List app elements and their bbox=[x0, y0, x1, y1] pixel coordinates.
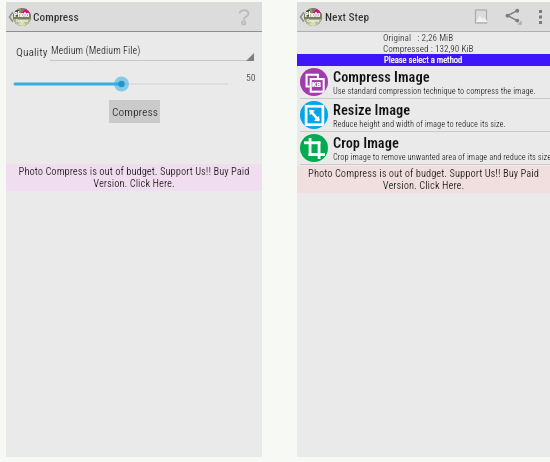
staticText: Quality bbox=[16, 45, 48, 58]
button[interactable]: Crop Image bbox=[297, 132, 550, 164]
staticText: Photo bbox=[14, 11, 30, 19]
button[interactable]: More options bbox=[530, 2, 550, 31]
button[interactable]: Photo bbox=[297, 2, 374, 31]
staticText: Compress Image bbox=[333, 69, 430, 86]
button[interactable]: Photo Compress is out of budget. Support… bbox=[297, 166, 550, 193]
staticText: Medium (Medium File) bbox=[51, 45, 141, 57]
staticText: Original : 2,26 MiB bbox=[383, 32, 454, 43]
button[interactable]: Help bbox=[226, 2, 262, 31]
staticText: Crop Image bbox=[333, 135, 399, 152]
staticText: Compress bbox=[33, 10, 79, 23]
staticText: Compress bbox=[16, 19, 29, 23]
staticText: 50 bbox=[246, 72, 256, 83]
staticText: Reduce height and width of image to redu… bbox=[333, 119, 506, 129]
button[interactable]: Preview image bbox=[466, 2, 496, 31]
button[interactable]: KB bbox=[297, 66, 550, 98]
button[interactable]: Photo Compress is out of budget. Support… bbox=[6, 164, 262, 191]
staticText: KB bbox=[312, 80, 321, 89]
staticText: Next Step bbox=[325, 10, 370, 23]
staticText: Resize Image bbox=[333, 102, 411, 119]
button[interactable]: Resize Image bbox=[297, 99, 550, 131]
staticText: Compressed : 132,90 KiB bbox=[383, 43, 474, 54]
staticText: Use standard compression technique to co… bbox=[333, 86, 536, 96]
button[interactable]: Photo bbox=[6, 2, 83, 31]
button[interactable]: Share bbox=[496, 2, 530, 31]
staticText: Please select a method bbox=[384, 55, 463, 65]
staticText: Compress bbox=[307, 19, 320, 23]
staticText: Crop image to remove unwanted area of im… bbox=[333, 152, 550, 162]
staticText: Compress bbox=[112, 105, 158, 118]
button[interactable]: Compress bbox=[109, 100, 160, 123]
button[interactable]: Medium (Medium File) bbox=[50, 46, 254, 64]
staticText: Photo Compress is out of budget. Support… bbox=[297, 167, 550, 192]
staticText: Photo Compress is out of budget. Support… bbox=[6, 165, 262, 190]
staticText: Photo bbox=[305, 11, 321, 19]
